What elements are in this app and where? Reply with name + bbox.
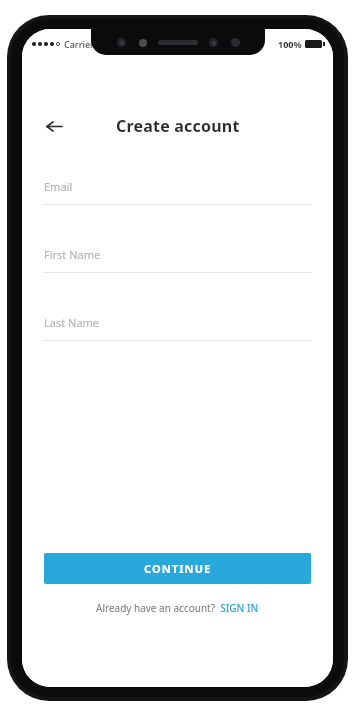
staticText: Email	[44, 179, 73, 194]
staticText: Last Name	[44, 315, 100, 330]
staticText: Already have an account? SIGN IN	[96, 601, 259, 615]
button[interactable]: Already have an account? SIGN IN	[22, 601, 333, 615]
staticText: First Name	[44, 247, 101, 262]
button[interactable]: Back	[34, 106, 74, 146]
staticText: 100%	[278, 38, 302, 50]
button[interactable]: First Name	[44, 247, 311, 273]
staticText: CONTINUE	[144, 561, 212, 576]
staticText: Create account	[116, 115, 240, 137]
staticText: Carrier	[64, 38, 94, 50]
button[interactable]: Last Name	[44, 315, 311, 341]
button[interactable]: Email	[44, 179, 311, 205]
button[interactable]: CONTINUE	[44, 553, 311, 584]
